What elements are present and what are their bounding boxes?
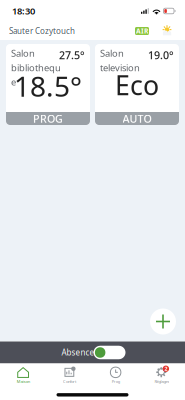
button[interactable]: Absence	[0, 341, 185, 363]
button[interactable]: Air quality	[135, 27, 149, 35]
staticText: 19.0°	[148, 48, 174, 62]
staticText: bibliothequ	[11, 61, 61, 74]
staticText: PROG	[33, 111, 63, 126]
staticText: Réglages	[154, 379, 169, 384]
staticText: Maison	[17, 379, 30, 384]
button[interactable]: Add device	[150, 308, 176, 334]
staticText: AUTO	[122, 111, 151, 126]
staticText: 27.5°	[59, 48, 85, 62]
staticText: Prog	[112, 379, 120, 384]
staticText: Confort	[63, 379, 76, 384]
staticText: AIR	[136, 27, 148, 35]
button[interactable]: Prog	[92, 363, 139, 387]
staticText: 18.5°	[14, 67, 82, 105]
staticText: Sauter Cozytouch	[9, 26, 75, 36]
staticText: television	[100, 61, 140, 74]
staticText: 2	[164, 365, 167, 372]
staticText: 18:30	[12, 5, 35, 17]
staticText: Salon	[11, 47, 35, 59]
button[interactable]: Maison	[0, 363, 46, 387]
button[interactable]: Salon	[95, 44, 179, 125]
staticText: e	[11, 76, 16, 88]
button[interactable]: Confort	[46, 363, 92, 387]
staticText: Absence	[61, 347, 94, 358]
staticText: Eco	[115, 67, 159, 103]
button[interactable]: 2	[139, 363, 185, 387]
staticText: Salon	[100, 47, 124, 59]
button[interactable]: Salon	[6, 44, 90, 125]
